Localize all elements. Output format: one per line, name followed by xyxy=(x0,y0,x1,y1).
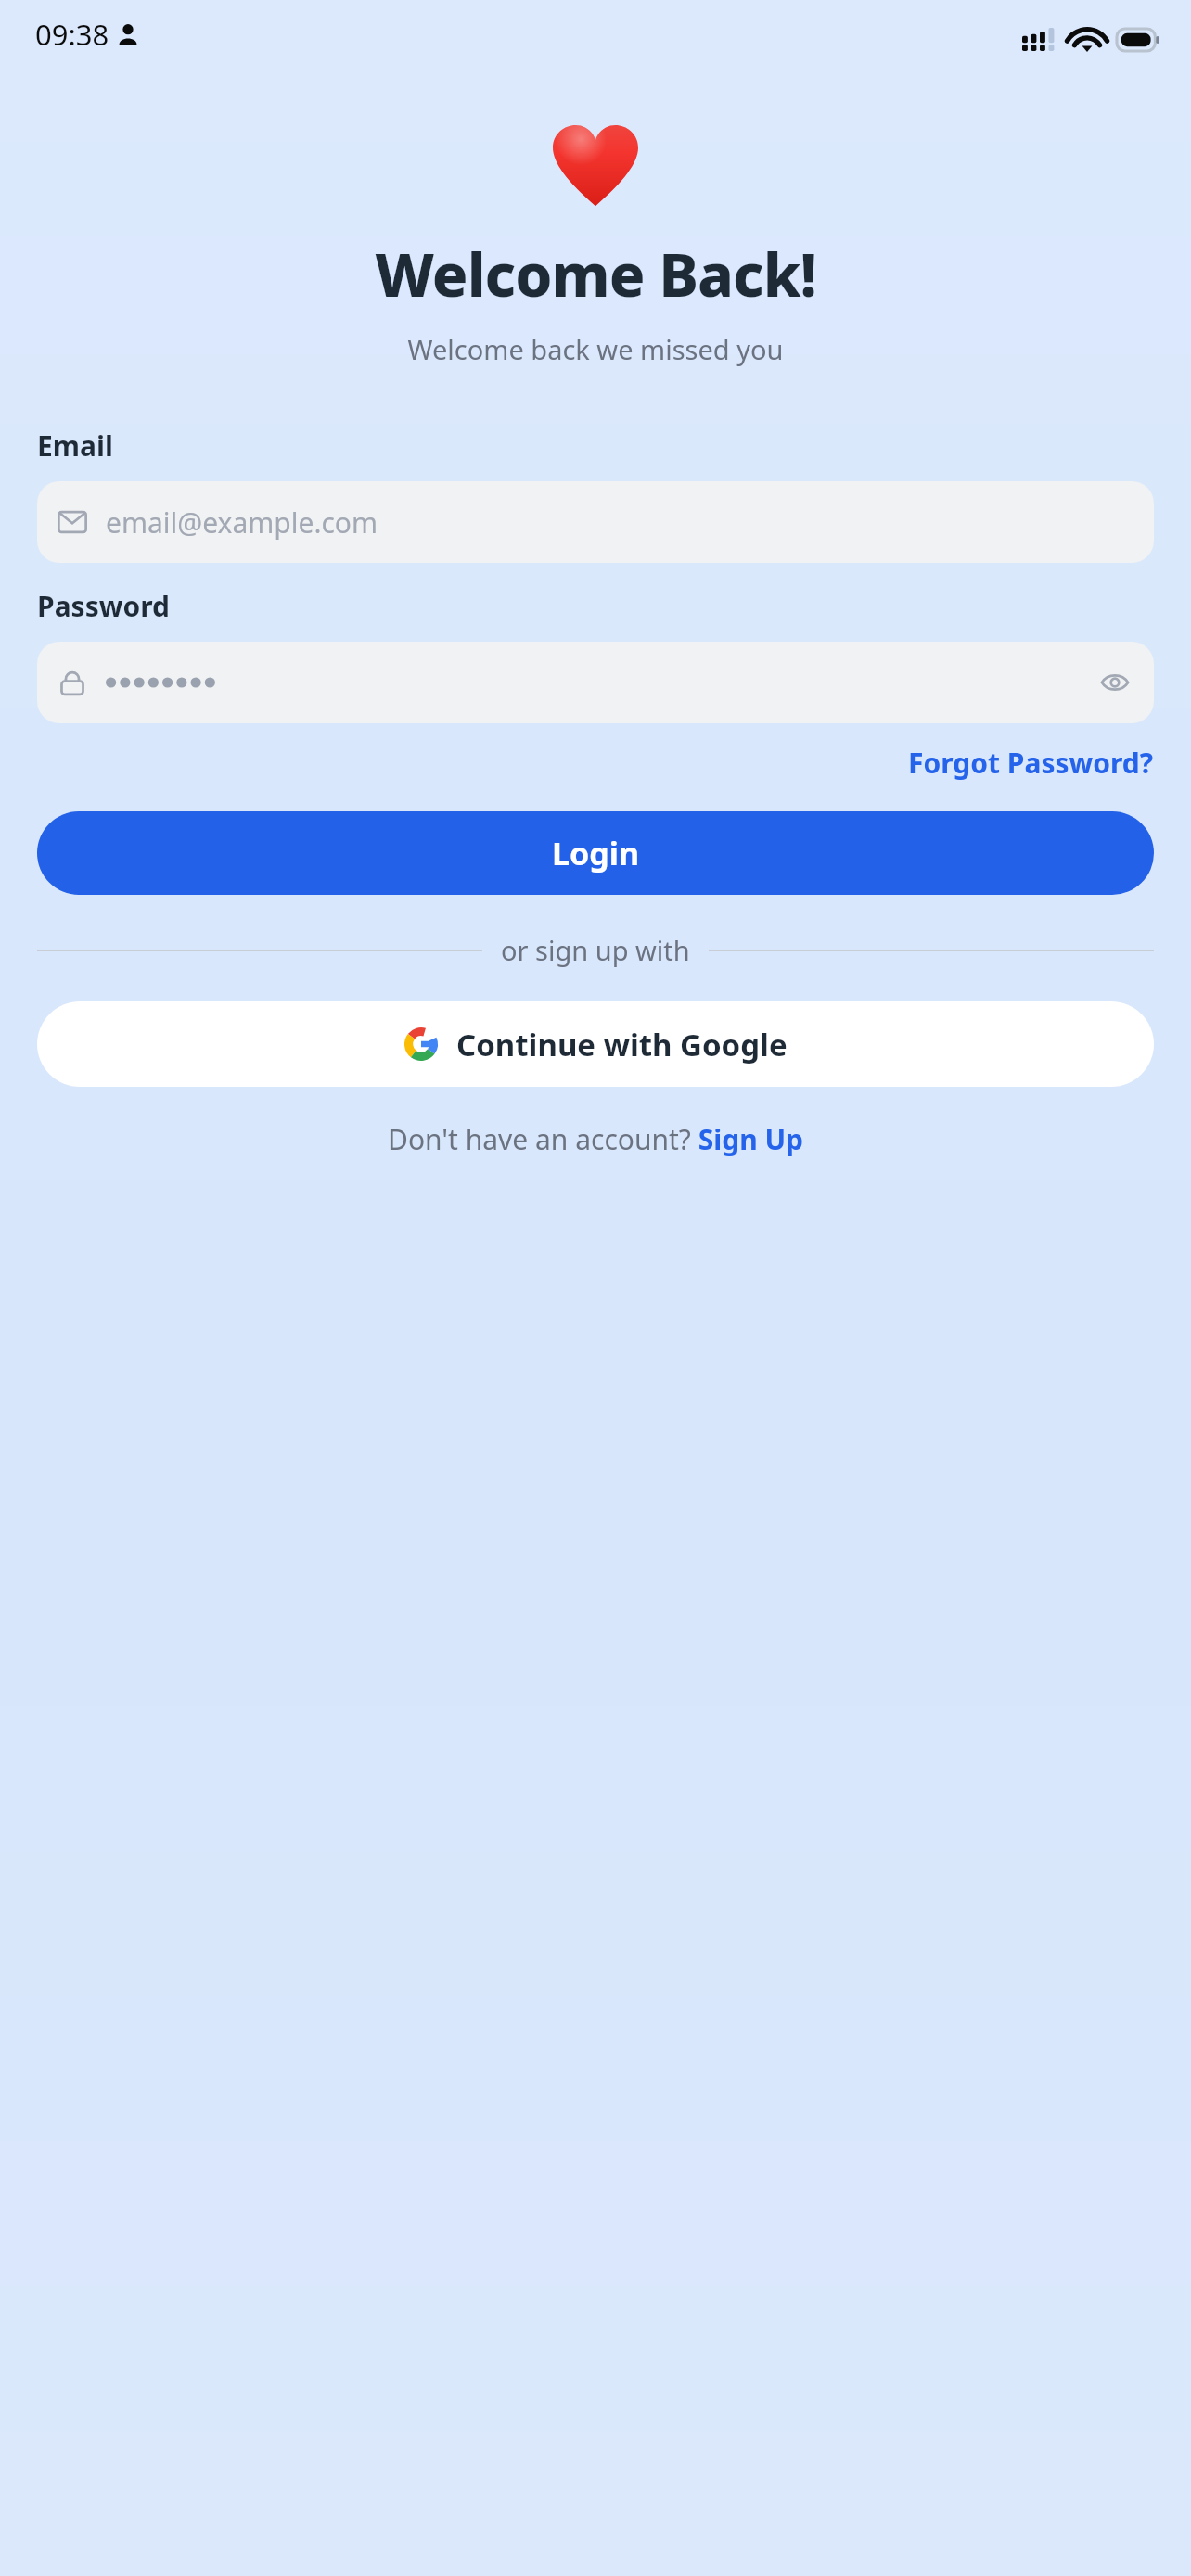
staticText: Continue with Google xyxy=(456,1024,788,1065)
staticText: Forgot Password? xyxy=(908,744,1154,782)
button[interactable]: Show password xyxy=(1096,664,1133,701)
button[interactable]: Login xyxy=(37,811,1154,895)
button[interactable]: Continue with Google xyxy=(37,1001,1154,1087)
staticText: Email xyxy=(37,427,113,465)
staticText: Don't have an account? Sign Up xyxy=(388,1120,804,1158)
staticText: Password xyxy=(37,587,170,625)
button[interactable]: Don't have an account? Sign Up xyxy=(388,1120,804,1158)
staticText: Welcome Back! xyxy=(0,234,1191,314)
button[interactable]: email@example.com xyxy=(37,481,1154,563)
staticText: email@example.com xyxy=(106,504,378,542)
staticText: or sign up with xyxy=(501,932,690,968)
staticText: Login xyxy=(552,832,640,874)
staticText: 09:38 xyxy=(35,15,109,54)
staticText: Welcome back we missed you xyxy=(0,331,1191,367)
button[interactable]: Show password xyxy=(37,642,1154,723)
button[interactable]: Forgot Password? xyxy=(908,744,1154,782)
